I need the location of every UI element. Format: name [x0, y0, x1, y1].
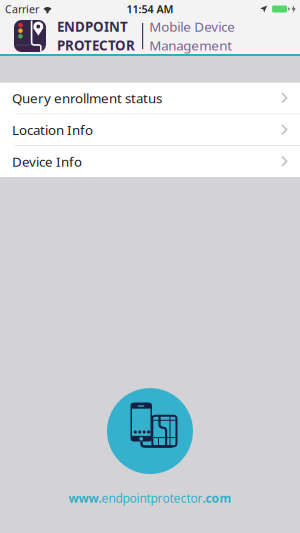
staticText: Carrier: [5, 2, 39, 16]
button[interactable]: www.: [68, 490, 231, 506]
staticText: PROTECTOR: [57, 36, 135, 54]
staticText: Mobile Device: [149, 18, 235, 35]
staticText: .com: [202, 490, 231, 506]
staticText: Location Info: [12, 121, 93, 139]
staticText: endpointprotector: [101, 490, 202, 506]
button[interactable]: Query enrollment status: [0, 83, 300, 114]
button[interactable]: Location Info: [0, 114, 300, 145]
staticText: Device Info: [12, 153, 82, 170]
staticText: Management: [149, 36, 232, 54]
staticText: 11:54 AM: [126, 2, 173, 16]
staticText: ENDPOINT: [57, 18, 128, 35]
button[interactable]: Device Info: [0, 146, 300, 177]
staticText: www.: [68, 490, 101, 506]
staticText: Query enrollment status: [12, 89, 162, 107]
